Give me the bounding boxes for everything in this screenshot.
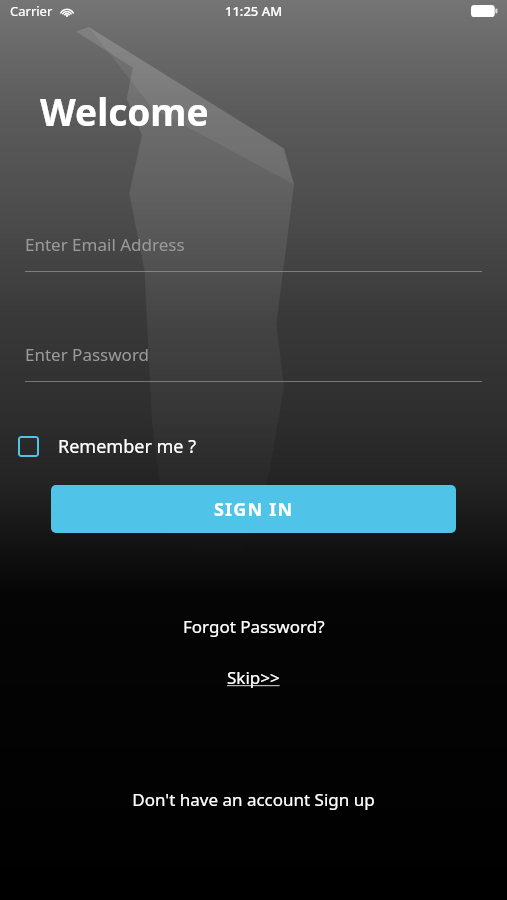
- button[interactable]: SIGN IN: [51, 485, 456, 533]
- staticText: Remember me ?: [58, 434, 196, 459]
- staticText: Carrier: [10, 2, 53, 20]
- staticText: 11:25 AM: [225, 2, 283, 20]
- button[interactable]: Forgot Password?: [173, 611, 335, 642]
- staticText: Welcome: [40, 86, 209, 136]
- button[interactable]: Skip>>: [217, 662, 290, 693]
- button[interactable]: Don't have an account Sign up: [122, 784, 385, 815]
- button[interactable]: Remember me ?: [18, 434, 204, 459]
- staticText: Enter Password: [25, 343, 150, 366]
- staticText: SIGN IN: [214, 497, 294, 522]
- staticText: Enter Email Address: [25, 233, 185, 256]
